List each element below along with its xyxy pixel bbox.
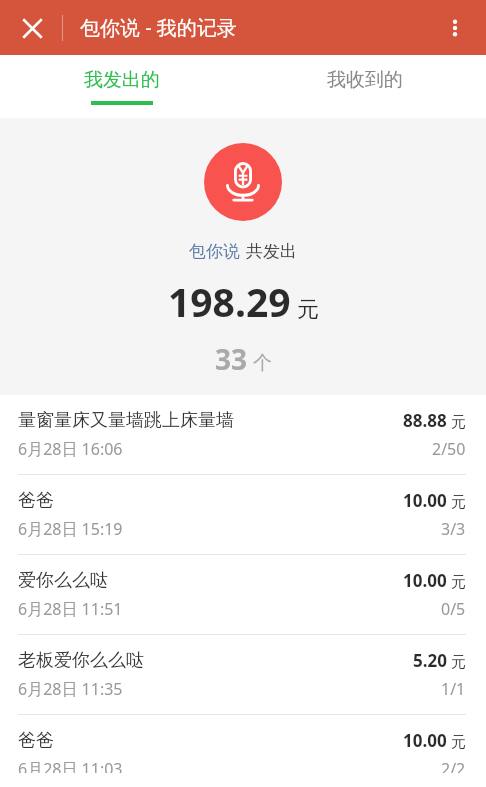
button[interactable]: 爸爸 bbox=[0, 475, 486, 554]
staticText: 6月28日 11:35 bbox=[18, 678, 123, 700]
staticText: 10.00 bbox=[403, 489, 447, 512]
staticText: 元 bbox=[451, 573, 466, 592]
staticText: 3/3 bbox=[441, 518, 466, 540]
staticText: 共发出 bbox=[246, 241, 297, 262]
staticText: 6月28日 11:51 bbox=[18, 598, 123, 620]
button[interactable]: 爱你么么哒 bbox=[0, 555, 486, 634]
staticText: 元 bbox=[451, 493, 466, 512]
staticText: 包你说 - 我的记录 bbox=[80, 14, 237, 41]
button[interactable]: 包你说 voice red packet bbox=[204, 143, 282, 221]
staticText: 老板爱你么么哒 bbox=[18, 649, 405, 672]
staticText: 198.29 bbox=[168, 275, 291, 328]
staticText: 88.88 bbox=[403, 409, 447, 432]
staticText: 我发出的 bbox=[84, 68, 160, 92]
staticText: 元 bbox=[451, 733, 466, 752]
button[interactable]: 我收到的 bbox=[243, 55, 486, 118]
button[interactable]: Close bbox=[10, 6, 54, 50]
button[interactable]: More options bbox=[433, 6, 477, 50]
button[interactable]: 量窗量床又量墙跳上床量墙 bbox=[0, 395, 486, 474]
staticText: 爱你么么哒 bbox=[18, 569, 395, 592]
staticText: 2/50 bbox=[432, 438, 466, 460]
staticText: 5.20 bbox=[413, 649, 447, 672]
staticText: 1/1 bbox=[441, 678, 466, 700]
button[interactable]: 我发出的 bbox=[0, 55, 243, 118]
staticText: 爸爸 bbox=[18, 729, 395, 752]
staticText: 6月28日 11:03 bbox=[18, 758, 123, 773]
staticText: 0/5 bbox=[441, 598, 466, 620]
button[interactable]: 包你说 bbox=[189, 241, 240, 262]
staticText: 6月28日 16:06 bbox=[18, 438, 123, 460]
staticText: 我收到的 bbox=[327, 68, 403, 92]
button[interactable]: 老板爱你么么哒 bbox=[0, 635, 486, 714]
staticText: 33 bbox=[215, 340, 248, 378]
staticText: 爸爸 bbox=[18, 489, 395, 512]
staticText: 量窗量床又量墙跳上床量墙 bbox=[18, 409, 395, 432]
staticText: 10.00 bbox=[403, 729, 447, 752]
staticText: 元 bbox=[451, 653, 466, 672]
staticText: 元 bbox=[297, 296, 319, 324]
button[interactable]: 爸爸 bbox=[0, 715, 486, 787]
staticText: 个 bbox=[253, 351, 272, 375]
staticText: 10.00 bbox=[403, 569, 447, 592]
staticText: 2/2 bbox=[441, 758, 466, 773]
staticText: 6月28日 15:19 bbox=[18, 518, 123, 540]
staticText: 元 bbox=[451, 413, 466, 432]
